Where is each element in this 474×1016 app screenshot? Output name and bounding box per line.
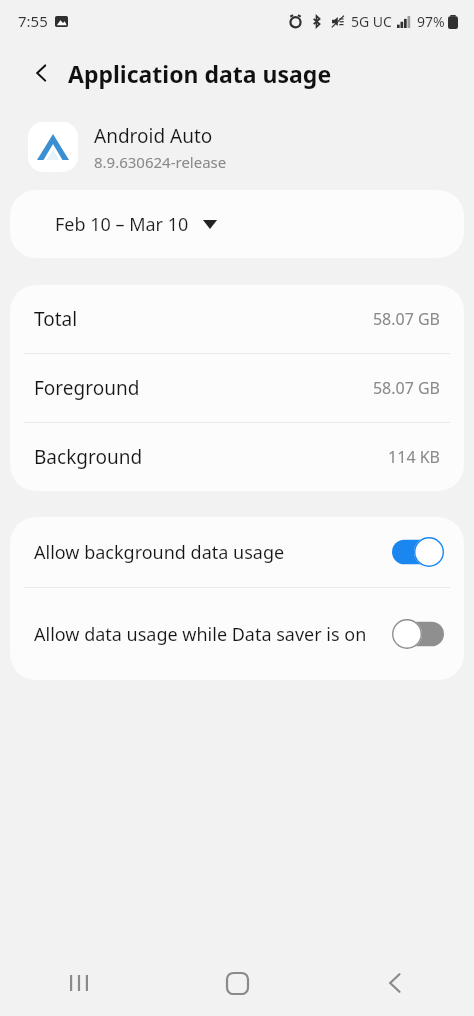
button[interactable]: Total xyxy=(10,285,464,353)
button[interactable]: Recents xyxy=(0,950,158,1016)
button[interactable]: Allow data usage while Data saver is on xyxy=(10,588,464,680)
staticText: Feb 10 – Mar 10 xyxy=(55,212,189,237)
button[interactable]: Background xyxy=(10,423,464,491)
button[interactable]: Back xyxy=(20,51,64,95)
staticText: 97% xyxy=(417,12,445,31)
staticText: Application data usage xyxy=(68,58,332,89)
staticText: 5G UC xyxy=(351,12,392,31)
button[interactable]: Allow background data usage xyxy=(10,517,464,587)
staticText: Allow data usage while Data saver is on xyxy=(34,622,367,647)
button[interactable]: Back xyxy=(316,950,474,1016)
staticText: 114 KB xyxy=(388,446,440,468)
staticText: 58.07 GB xyxy=(372,308,440,330)
staticText: 8.9.630624-release xyxy=(94,152,227,172)
button[interactable]: Feb 10 – Mar 10 xyxy=(10,190,464,258)
staticText: Android Auto xyxy=(94,123,213,149)
staticText: 7:55 xyxy=(18,11,48,31)
button[interactable]: Home xyxy=(158,950,316,1016)
staticText: Foreground xyxy=(34,375,140,401)
staticText: Background xyxy=(34,444,143,470)
staticText: 58.07 GB xyxy=(372,377,440,399)
staticText: Total xyxy=(34,306,78,332)
staticText: Allow background data usage xyxy=(34,540,285,565)
button[interactable]: Foreground xyxy=(10,354,464,422)
